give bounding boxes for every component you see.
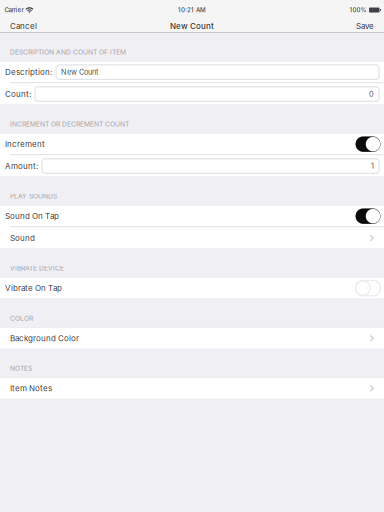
button[interactable]: Background Color xyxy=(0,327,384,349)
staticText: New Count xyxy=(61,68,98,77)
staticText: 0 xyxy=(369,90,374,98)
staticText: Item Notes xyxy=(10,383,52,393)
staticText: Vibrate On Tap xyxy=(5,283,62,293)
staticText: 1 xyxy=(371,162,374,170)
staticText: Amount: xyxy=(5,161,38,171)
staticText: Carrier xyxy=(4,6,23,14)
button[interactable]: Cancel xyxy=(0,20,47,32)
staticText: Cancel xyxy=(10,21,37,31)
staticText: Increment xyxy=(5,139,45,149)
staticText: NOTES xyxy=(10,364,32,372)
button[interactable]: Vibrate On Tap xyxy=(0,277,384,299)
staticText: Save xyxy=(356,21,374,31)
staticText: PLAY SOUNDS xyxy=(10,192,57,200)
staticText: VIBRATE DEVICE xyxy=(10,264,64,272)
button[interactable]: Sound On Tap xyxy=(0,205,384,227)
button[interactable]: Save xyxy=(346,20,384,32)
button[interactable]: Sound xyxy=(0,227,384,249)
staticText: Description: xyxy=(5,67,52,77)
staticText: Sound On Tap xyxy=(5,211,59,221)
button[interactable]: Increment xyxy=(0,133,384,155)
button[interactable]: Item Notes xyxy=(0,377,384,399)
staticText: 10:21 AM xyxy=(178,6,206,14)
staticText: Sound xyxy=(10,233,35,243)
staticText: DESCRIPTION AND COUNT OF ITEM xyxy=(10,48,126,56)
staticText: Count: xyxy=(5,89,31,99)
staticText: INCREMENT OR DECREMENT COUNT xyxy=(10,120,129,128)
staticText: COLOR xyxy=(10,314,33,322)
staticText: New Count xyxy=(170,21,214,31)
staticText: 100% xyxy=(349,6,366,14)
staticText: Background Color xyxy=(10,333,79,343)
